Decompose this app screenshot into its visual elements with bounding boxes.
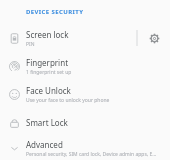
staticText: Smart Lock	[26, 117, 68, 128]
staticText: Advanced	[26, 139, 63, 150]
staticText: Personal security, SIM card lock, Device…	[26, 151, 157, 158]
button[interactable]: Advanced	[0, 136, 170, 160]
staticText: Face Unlock	[26, 85, 71, 96]
staticText: Use your face to unlock your phone	[26, 97, 110, 104]
staticText: Screen lock	[26, 29, 69, 40]
staticText: PIN	[26, 41, 35, 48]
staticText: DEVICE SECURITY	[26, 8, 84, 16]
button[interactable]: Smart Lock	[0, 108, 170, 136]
button[interactable]: Face Unlock	[0, 80, 170, 108]
staticText: 1 fingerprint set up	[26, 69, 72, 76]
button[interactable]: Screen lock	[0, 24, 170, 52]
staticText: Fingerprint	[26, 57, 69, 68]
button[interactable]: Fingerprint	[0, 52, 170, 80]
button[interactable]: Screen lock settings	[138, 24, 170, 52]
